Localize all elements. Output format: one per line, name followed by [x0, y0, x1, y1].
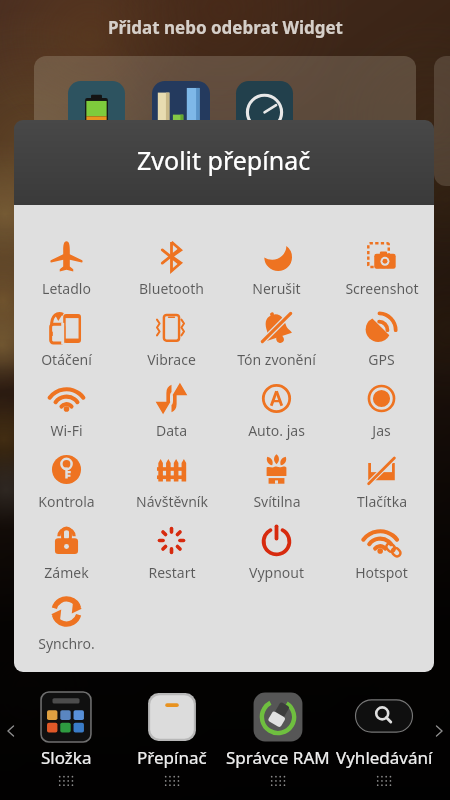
staticText: Auto. jas: [248, 421, 305, 440]
button[interactable]: Hotspot: [329, 524, 434, 595]
staticText: Screenshot: [345, 279, 419, 298]
staticText: Návštěvník: [136, 492, 208, 511]
button[interactable]: Vypnout: [224, 524, 329, 595]
staticText: Kontrola: [38, 492, 95, 511]
button[interactable]: Vyhledávání: [331, 691, 437, 786]
button[interactable]: Data: [119, 382, 224, 453]
staticText: GPS: [368, 350, 395, 369]
staticText: Tlačítka: [357, 492, 407, 511]
staticText: Restart: [148, 563, 196, 582]
staticText: Vyhledávání: [336, 746, 433, 769]
staticText: Letadlo: [42, 279, 91, 298]
button[interactable]: Otáčení: [14, 311, 119, 382]
staticText: Složka: [41, 746, 92, 769]
staticText: Hotspot: [355, 563, 408, 582]
button[interactable]: Bluetooth: [119, 240, 224, 311]
button[interactable]: Tón zvonění: [224, 311, 329, 382]
button[interactable]: Jas: [329, 382, 434, 453]
button[interactable]: Zámek: [14, 524, 119, 595]
staticText: Wi-Fi: [50, 421, 83, 440]
staticText: Synchro.: [38, 634, 95, 653]
staticText: Tón zvonění: [237, 350, 316, 369]
button[interactable]: Svítilna: [224, 453, 329, 524]
button[interactable]: GPS: [329, 311, 434, 382]
staticText: Jas: [372, 421, 391, 440]
staticText: Vibrace: [147, 350, 196, 369]
staticText: Data: [156, 421, 187, 440]
staticText: Přepínač: [137, 746, 207, 769]
staticText: Vypnout: [249, 563, 304, 582]
staticText: Otáčení: [41, 350, 92, 369]
button[interactable]: Auto. jas: [224, 382, 329, 453]
staticText: Přidat nebo odebrat Widget: [108, 16, 343, 39]
staticText: Nerušit: [252, 279, 301, 298]
button[interactable]: Vibrace: [119, 311, 224, 382]
staticText: Zámek: [44, 563, 89, 582]
button[interactable]: Screenshot: [329, 240, 434, 311]
staticText: Svítilna: [253, 492, 301, 511]
button[interactable]: Složka: [13, 691, 119, 786]
staticText: Bluetooth: [139, 279, 204, 298]
button[interactable]: Kontrola: [14, 453, 119, 524]
button[interactable]: Nerušit: [224, 240, 329, 311]
button[interactable]: Tlačítka: [329, 453, 434, 524]
button[interactable]: Návštěvník: [119, 453, 224, 524]
button[interactable]: Restart: [119, 524, 224, 595]
staticText: Správce RAM: [226, 746, 330, 769]
button[interactable]: Wi-Fi: [14, 382, 119, 453]
button[interactable]: Letadlo: [14, 240, 119, 311]
button[interactable]: Přepínač: [119, 691, 225, 786]
staticText: Zvolit přepínač: [137, 143, 311, 177]
button[interactable]: Synchro.: [14, 595, 119, 666]
button[interactable]: Správce RAM: [225, 691, 331, 786]
